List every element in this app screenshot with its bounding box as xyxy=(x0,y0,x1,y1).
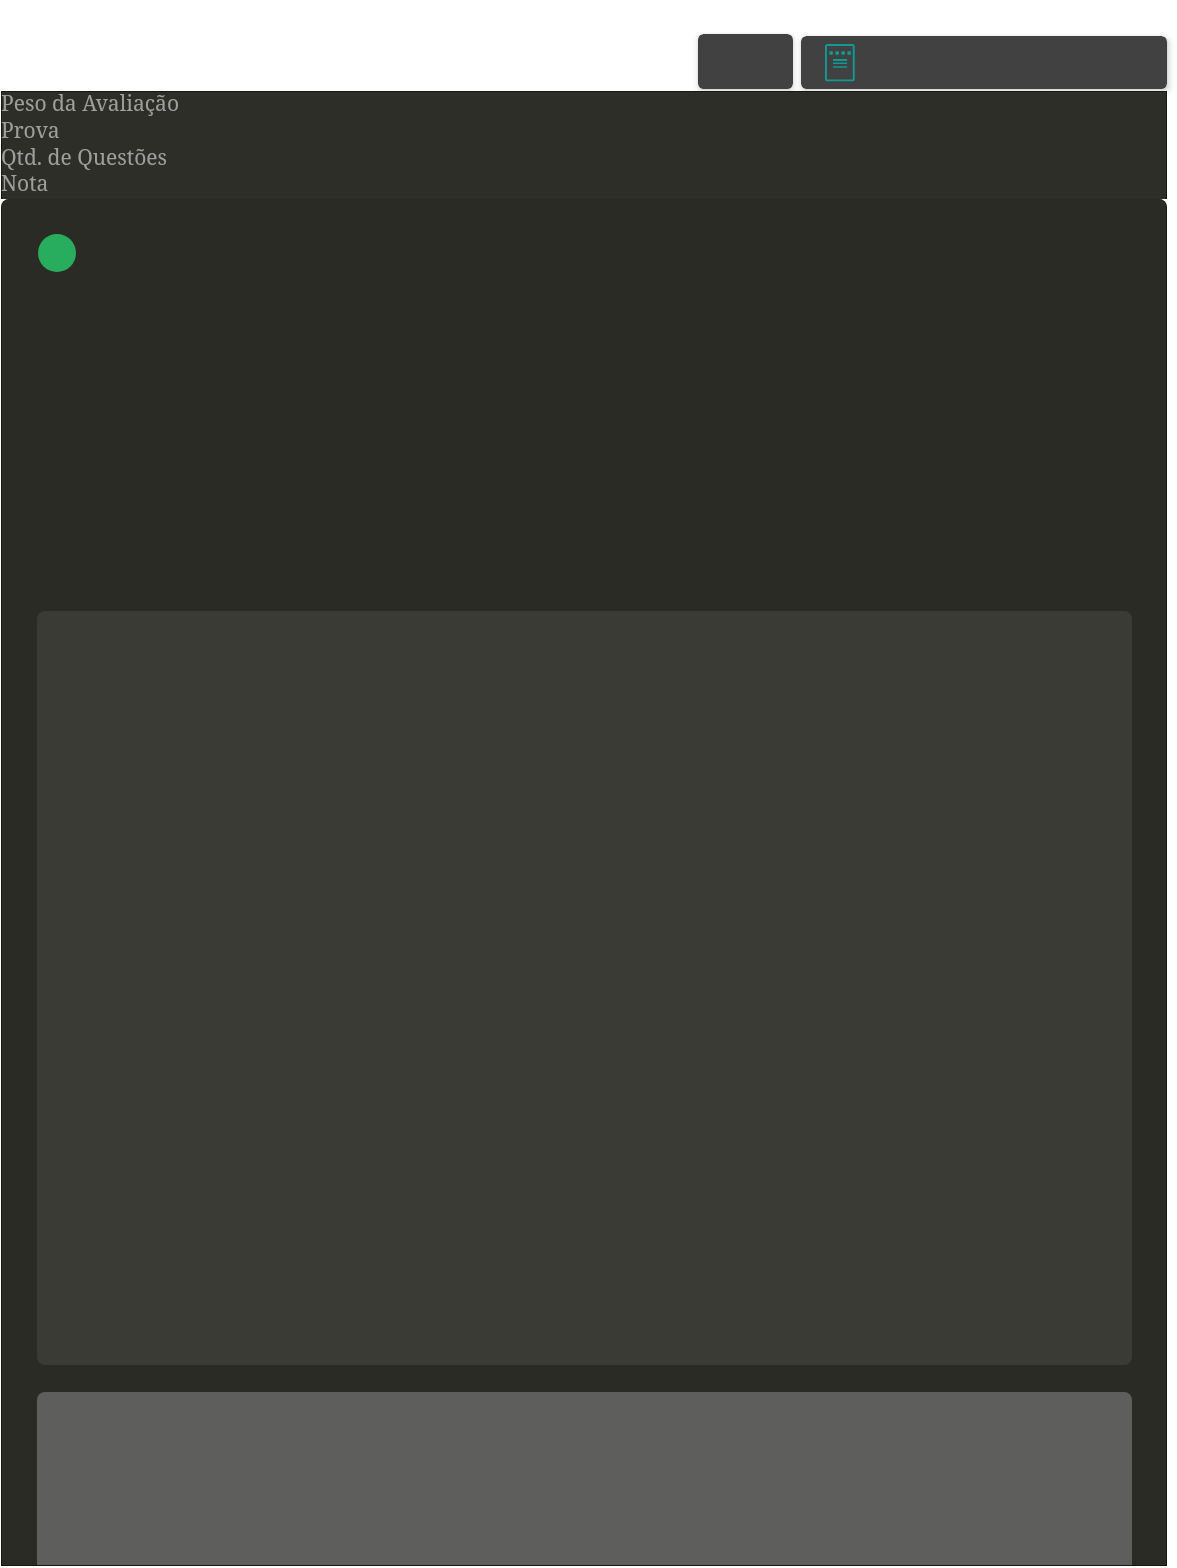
staticText: Nota xyxy=(1,169,49,198)
staticText: Qtd. de Questões xyxy=(1,143,168,172)
button[interactable]: Status xyxy=(38,234,76,272)
button[interactable]: Notas xyxy=(801,36,1167,89)
button[interactable]: Filtrar xyxy=(698,34,793,89)
staticText: Prova xyxy=(1,116,60,145)
staticText: Peso da Avaliação xyxy=(1,89,179,118)
